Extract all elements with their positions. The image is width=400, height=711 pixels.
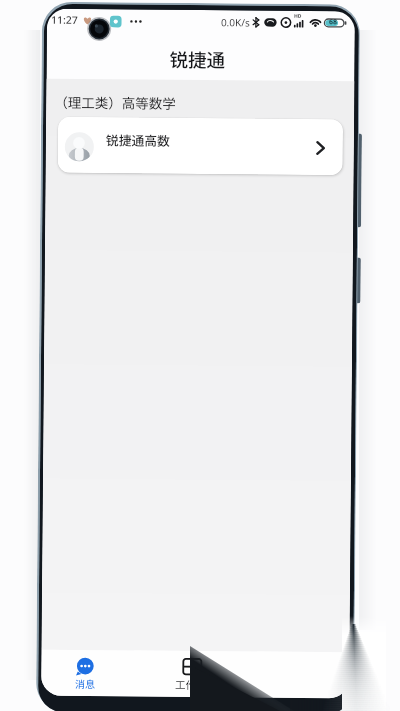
button[interactable]: 消息 [65,652,105,694]
staticText: 11:27 [51,13,78,27]
staticText: 锐捷通高数 [106,130,170,150]
staticText: （理工类）高等数学 [54,92,176,113]
button[interactable]: 工作台 [171,653,215,695]
staticText: HD [294,13,302,20]
staticText: 工作台 [175,677,207,692]
staticText: 68 [329,17,338,27]
button[interactable]: 锐捷通高数 [58,117,343,175]
staticText: 0.0K/s [221,15,250,29]
staticText: 锐捷通 [169,46,226,73]
staticText: 消息 [75,676,95,690]
